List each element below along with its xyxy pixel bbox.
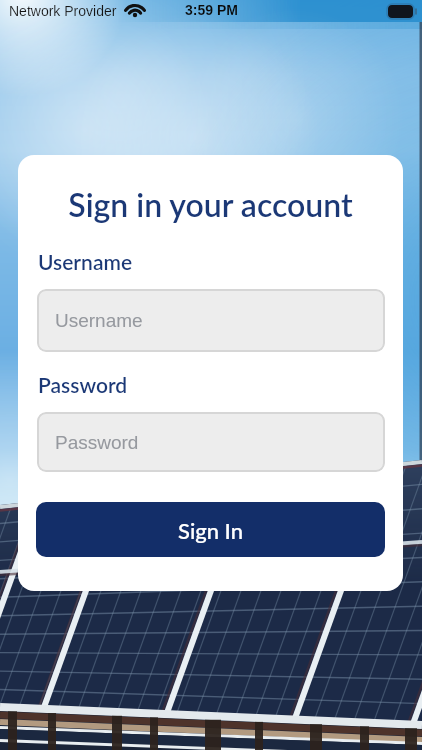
button[interactable]: Sign In bbox=[36, 502, 385, 557]
button[interactable]: Password bbox=[37, 412, 385, 472]
staticText: Username bbox=[55, 310, 143, 331]
button[interactable]: Username bbox=[37, 289, 385, 352]
staticText: Network Provider bbox=[9, 3, 117, 19]
staticText: Sign in your account bbox=[18, 185, 403, 223]
staticText: 3:59 PM bbox=[185, 2, 238, 18]
staticText: Password bbox=[55, 432, 139, 453]
staticText: Username bbox=[38, 249, 133, 274]
staticText: Password bbox=[38, 372, 128, 397]
staticText: Sign In bbox=[178, 517, 243, 543]
